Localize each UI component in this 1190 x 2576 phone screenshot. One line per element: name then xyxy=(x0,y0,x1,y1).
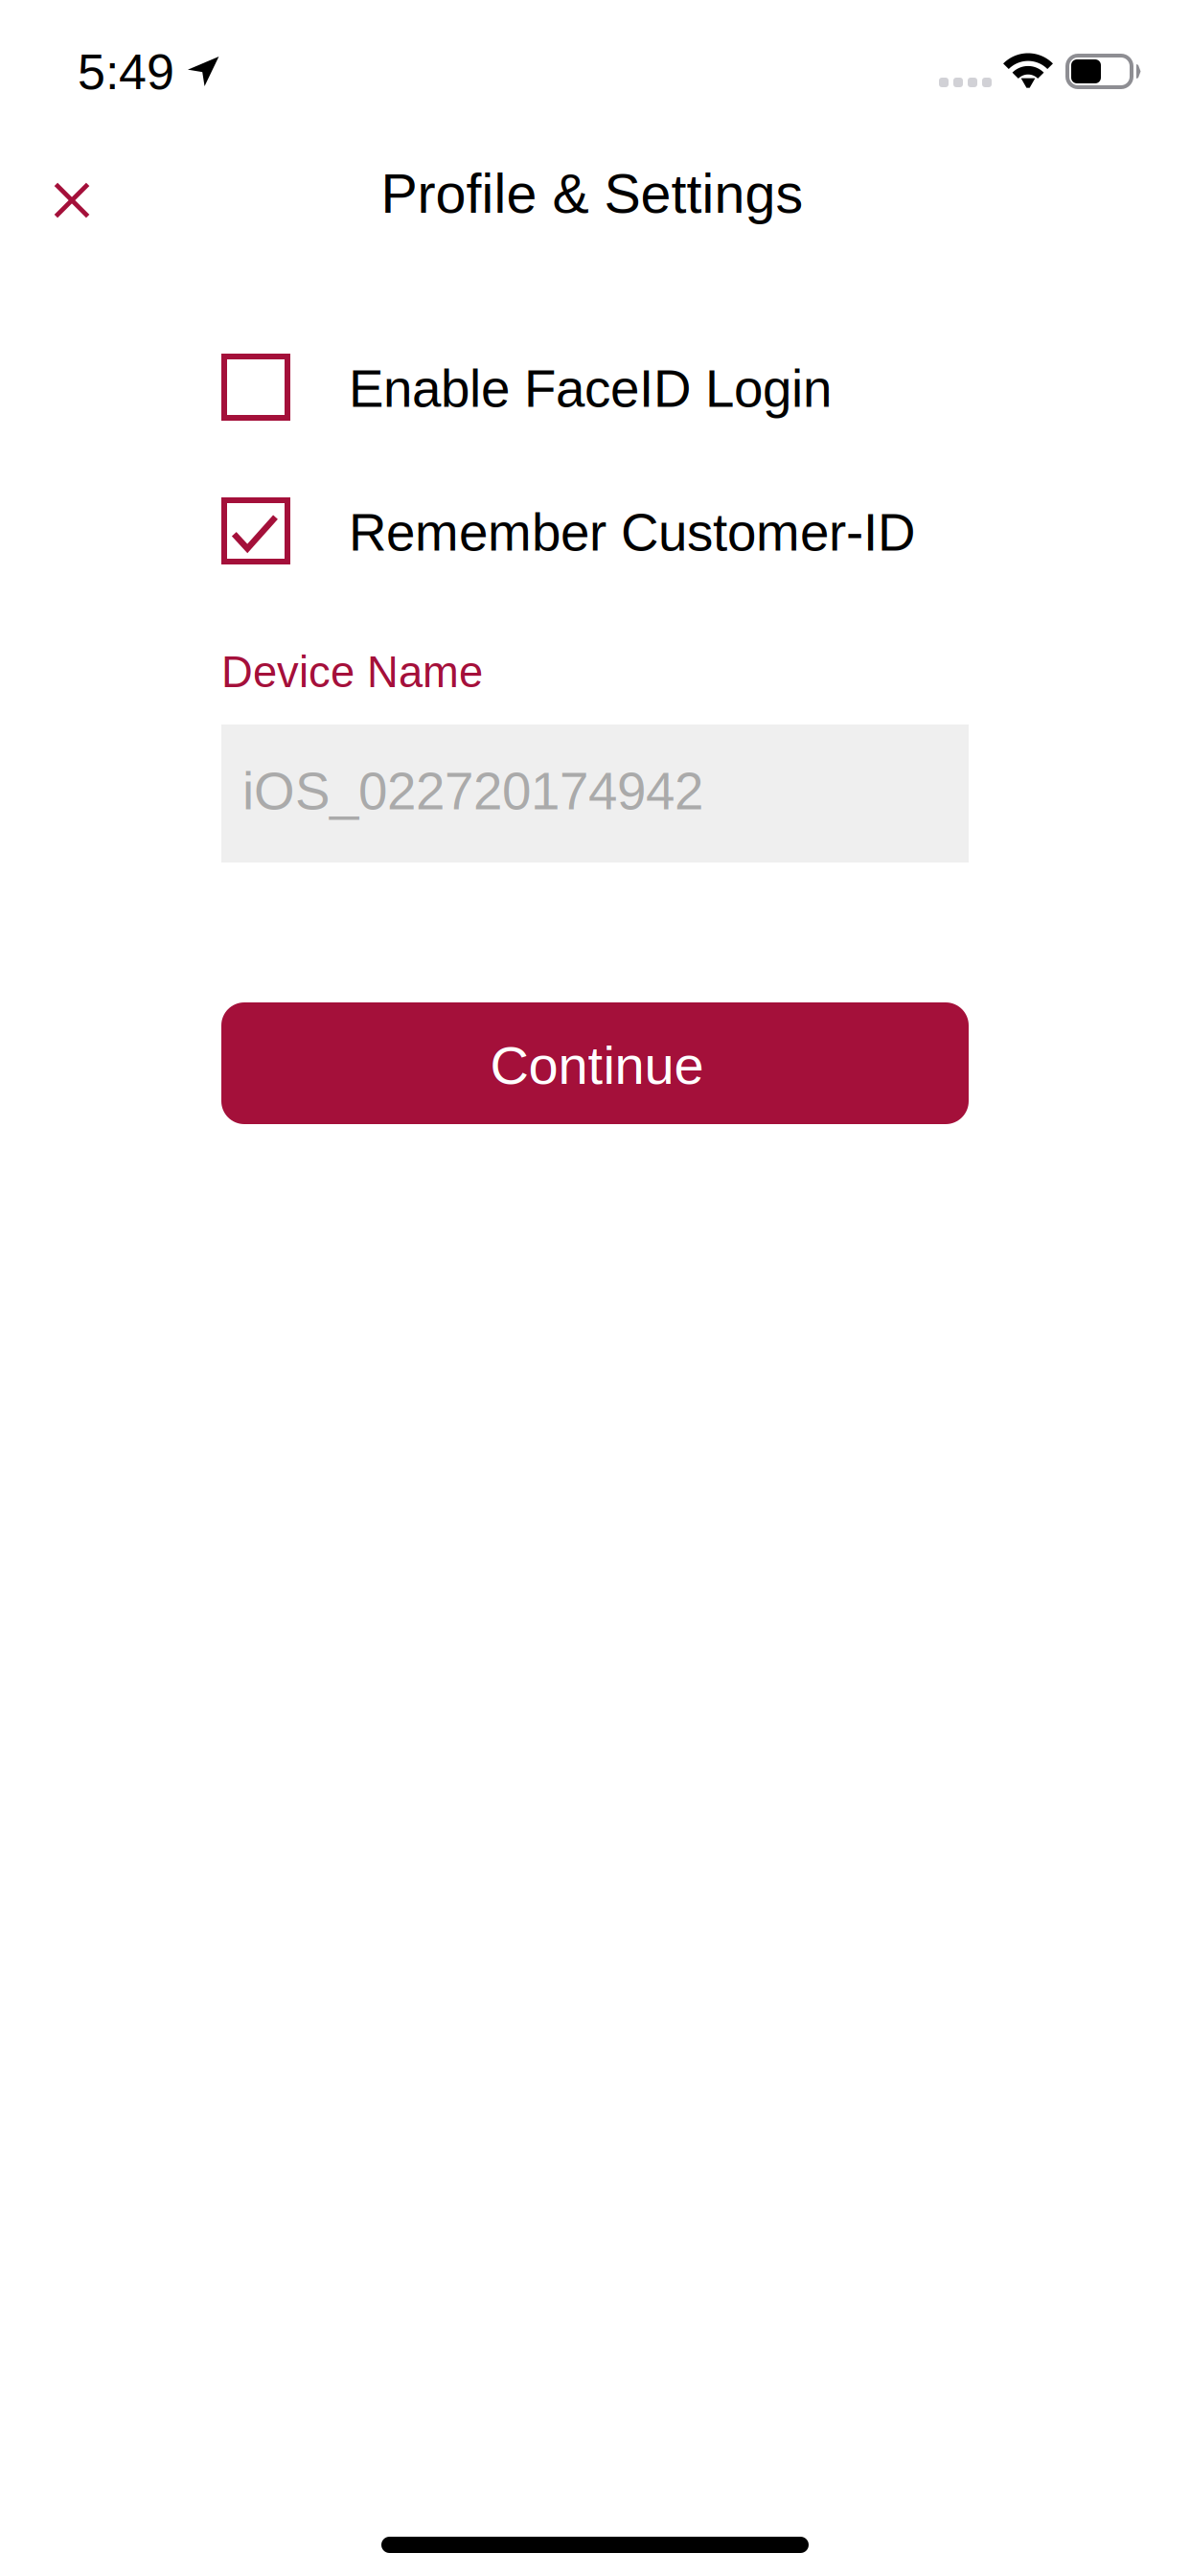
staticText: iOS_022720174942 xyxy=(242,762,703,820)
staticText: Device Name xyxy=(221,648,483,696)
button[interactable]: Remember Customer-ID xyxy=(221,495,969,566)
staticText: Remember Customer-ID xyxy=(349,503,915,562)
staticText: Profile & Settings xyxy=(381,163,803,224)
staticText: Enable FaceID Login xyxy=(349,359,832,418)
button[interactable]: Enable FaceID Login xyxy=(221,352,969,423)
button[interactable]: Continue xyxy=(221,1002,969,1124)
button[interactable]: Close xyxy=(20,149,124,252)
staticText: Continue xyxy=(490,1035,704,1095)
staticText: 5:49 xyxy=(78,44,174,100)
